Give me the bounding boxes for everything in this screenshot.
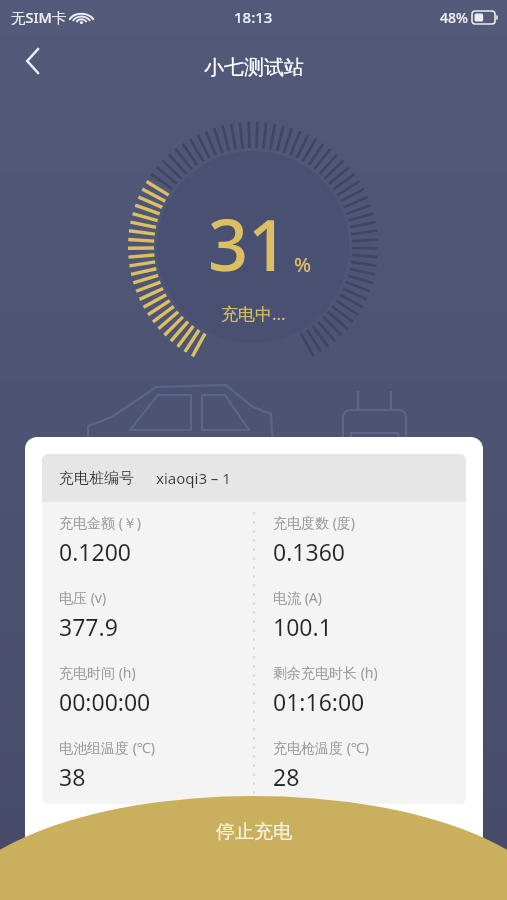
button[interactable]: Back <box>10 38 56 84</box>
staticText: 00:00:00 <box>59 686 151 717</box>
staticText: 48% <box>440 8 468 27</box>
staticText: % <box>294 251 312 278</box>
staticText: 28 <box>273 761 300 792</box>
staticText: 充电桩编号 <box>59 469 134 488</box>
staticText: 100.1 <box>273 611 332 642</box>
staticText: 电流 (A) <box>273 588 322 607</box>
staticText: 充电中... <box>221 302 286 325</box>
staticText: 充电枪温度 (℃) <box>273 738 369 757</box>
staticText: 电池组温度 (℃) <box>59 738 155 757</box>
staticText: 电压 (v) <box>59 588 107 607</box>
staticText: 充电金额 (￥) <box>59 513 142 532</box>
staticText: 无SIM卡 <box>11 7 67 27</box>
staticText: 377.9 <box>59 611 118 642</box>
staticText: 停止充电 <box>216 820 292 844</box>
staticText: 小七测试站 <box>204 55 304 80</box>
staticText: 31 <box>208 196 289 291</box>
staticText: 38 <box>59 761 86 792</box>
button[interactable]: 停止充电 <box>0 780 507 900</box>
staticText: 充电时间 (h) <box>59 663 136 682</box>
staticText: 剩余充电时长 (h) <box>273 663 378 682</box>
staticText: 0.1200 <box>59 536 131 567</box>
staticText: 0.1360 <box>273 536 345 567</box>
staticText: 01:16:00 <box>273 686 365 717</box>
staticText: xiaoqi3 – 1 <box>156 468 231 488</box>
staticText: 18:13 <box>234 7 273 27</box>
staticText: 充电度数 (度) <box>273 513 356 532</box>
